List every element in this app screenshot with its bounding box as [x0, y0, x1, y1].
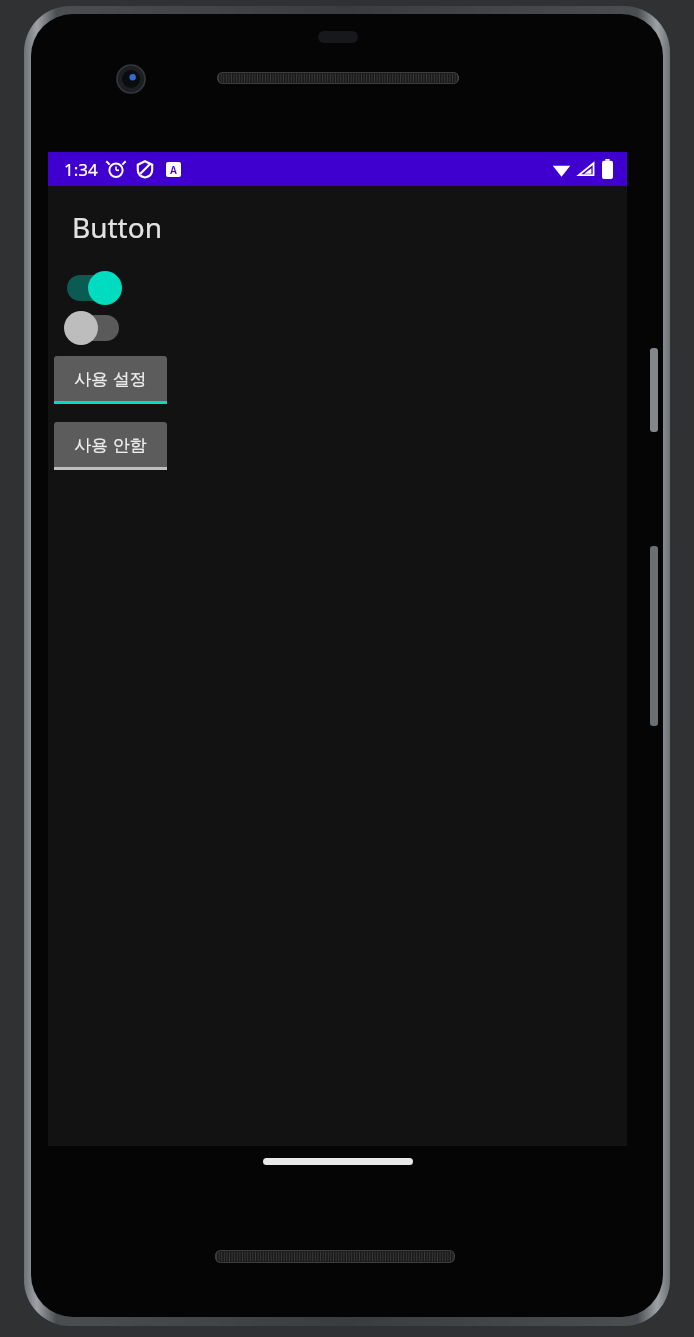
button[interactable]: 사용 설정	[54, 356, 167, 404]
button[interactable]: 사용 안함	[54, 422, 167, 470]
staticText: 1:34	[64, 158, 98, 181]
button[interactable]	[54, 308, 150, 348]
button[interactable]	[54, 268, 150, 308]
staticText: Button	[72, 208, 162, 246]
staticText: 사용 안함	[74, 433, 147, 456]
staticText: A	[170, 163, 177, 177]
staticText: 사용 설정	[74, 367, 147, 390]
